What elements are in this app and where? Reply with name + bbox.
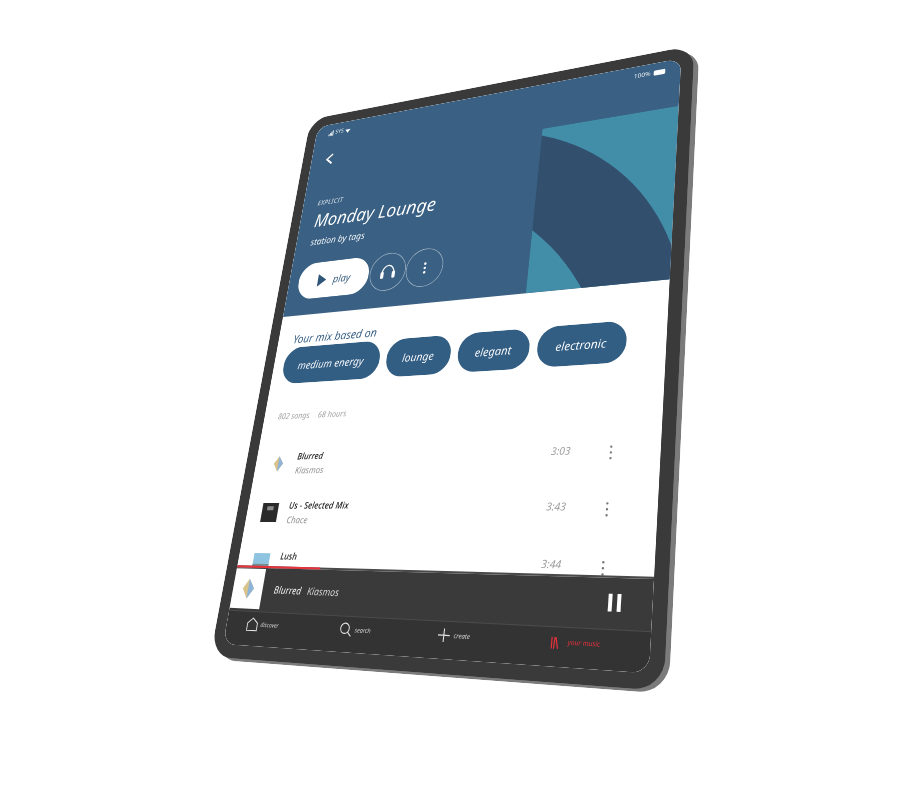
button[interactable]: discover — [224, 610, 320, 641]
staticText: search — [354, 626, 372, 635]
staticText: 802 songs — [277, 409, 311, 421]
button[interactable]: Track options — [601, 501, 613, 517]
button[interactable]: Lush — [233, 537, 656, 604]
staticText: Lush — [279, 549, 299, 563]
staticText: medium energy — [297, 353, 365, 372]
button[interactable]: electronic — [535, 320, 628, 368]
staticText: discover — [260, 621, 279, 630]
staticText: play — [332, 270, 352, 285]
staticText: elegant — [474, 342, 512, 360]
button[interactable]: create — [416, 619, 529, 654]
button[interactable]: elegant — [455, 328, 532, 373]
button[interactable]: More options — [403, 246, 446, 289]
button[interactable]: Pause — [602, 589, 628, 616]
staticText: Blurred — [273, 582, 302, 598]
staticText: lounge — [401, 348, 435, 365]
staticText: create — [453, 631, 471, 641]
button[interactable]: your music — [527, 625, 651, 662]
staticText: 100% — [633, 70, 651, 81]
staticText: 3:43 — [546, 498, 567, 514]
staticText: Kiasmos — [294, 463, 325, 476]
staticText: 3:44 — [540, 556, 563, 572]
staticText: electronic — [555, 334, 608, 354]
staticText: Your mix based on — [292, 324, 379, 347]
button[interactable]: search — [316, 614, 420, 647]
staticText: Us - Selected Mix — [288, 499, 350, 511]
staticText: Chace — [286, 513, 309, 526]
button[interactable]: Listen with headphones — [367, 251, 409, 293]
staticText: station by tags — [310, 229, 366, 248]
staticText: Monday Lounge — [313, 190, 438, 232]
staticText: EXPLICIT — [317, 195, 344, 207]
button[interactable]: medium energy — [280, 340, 382, 384]
button[interactable]: lounge — [384, 334, 453, 378]
button[interactable]: Track options — [605, 445, 617, 460]
button[interactable]: Blurred — [251, 426, 662, 488]
staticText: Kiasmos — [306, 583, 340, 599]
staticText: 3:03 — [550, 443, 572, 458]
button[interactable]: Us - Selected Mix — [242, 483, 659, 543]
staticText: 68 hours — [317, 407, 348, 419]
staticText: your music — [567, 638, 601, 649]
button[interactable]: Back — [318, 147, 342, 171]
staticText: Sevdaliza — [277, 564, 312, 578]
staticText: Blurred — [296, 449, 324, 462]
staticText: SYS — [335, 127, 345, 136]
button[interactable]: Track options — [597, 560, 609, 577]
button[interactable]: play — [295, 256, 372, 300]
